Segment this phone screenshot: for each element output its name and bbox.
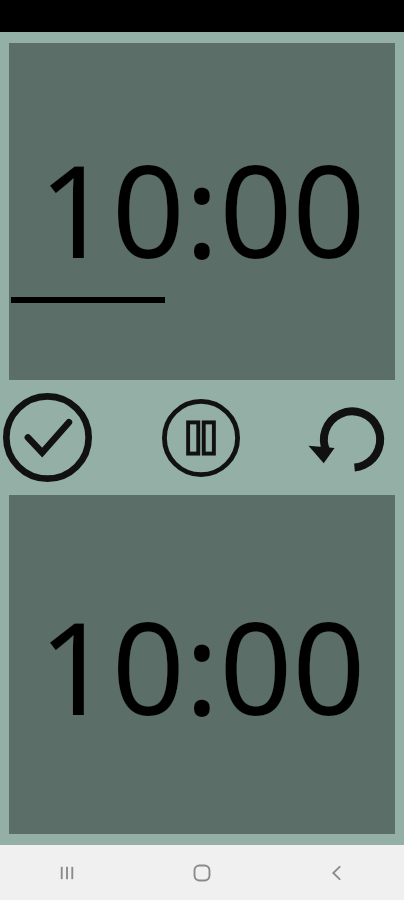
button[interactable]: Home	[134, 845, 269, 900]
button[interactable]: Recents	[0, 845, 134, 900]
button[interactable]: Pause	[161, 398, 241, 478]
button[interactable]: Done	[3, 393, 92, 482]
button[interactable]: Reset	[310, 399, 388, 477]
button[interactable]: Back	[269, 845, 404, 900]
staticText: 10:00	[38, 578, 366, 752]
button[interactable]: 10:00	[9, 43, 395, 380]
staticText: 10:00	[38, 121, 366, 295]
button[interactable]: 10:00	[9, 495, 395, 834]
